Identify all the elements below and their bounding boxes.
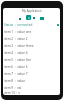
staticText: item 9 : val xyxy=(4,86,22,90)
staticText: item 2 : value 2 xyxy=(4,37,28,41)
staticText: item 4 : value 4 xyxy=(4,51,28,55)
button[interactable]: item 10 : v xyxy=(3,91,60,95)
button[interactable]: item 7 : value 7 xyxy=(3,70,60,77)
staticText: item 8 : value xyxy=(4,79,25,83)
staticText: item 7 : value 7 xyxy=(4,72,28,76)
button[interactable]: item 4 : value 4 xyxy=(3,49,60,56)
staticText: item 1 : value one xyxy=(4,30,32,34)
staticText: item 5 : value five xyxy=(4,58,31,62)
button[interactable]: Next xyxy=(33,17,35,19)
staticText: Status : connected xyxy=(4,23,33,27)
staticText: item 6 : value 6 xyxy=(4,65,28,69)
button[interactable]: item 5 : value five xyxy=(3,56,60,63)
button[interactable]: item 2 : value 2 xyxy=(3,35,60,42)
button[interactable]: item 9 : val xyxy=(3,84,60,91)
button[interactable]: Previous xyxy=(19,18,21,20)
staticText: My Application xyxy=(22,9,42,13)
button[interactable]: item 3 : value three xyxy=(3,42,60,49)
button[interactable]: Status : connected xyxy=(3,21,60,28)
button[interactable]: item 6 : value 6 xyxy=(3,63,60,70)
staticText: item 10 : v xyxy=(4,91,20,95)
button[interactable]: Play xyxy=(26,15,31,20)
button[interactable]: More options xyxy=(57,24,59,26)
button[interactable]: item 1 : value one xyxy=(3,28,60,35)
staticText: item 3 : value three xyxy=(4,44,34,48)
button[interactable]: item 8 : value xyxy=(3,77,60,84)
